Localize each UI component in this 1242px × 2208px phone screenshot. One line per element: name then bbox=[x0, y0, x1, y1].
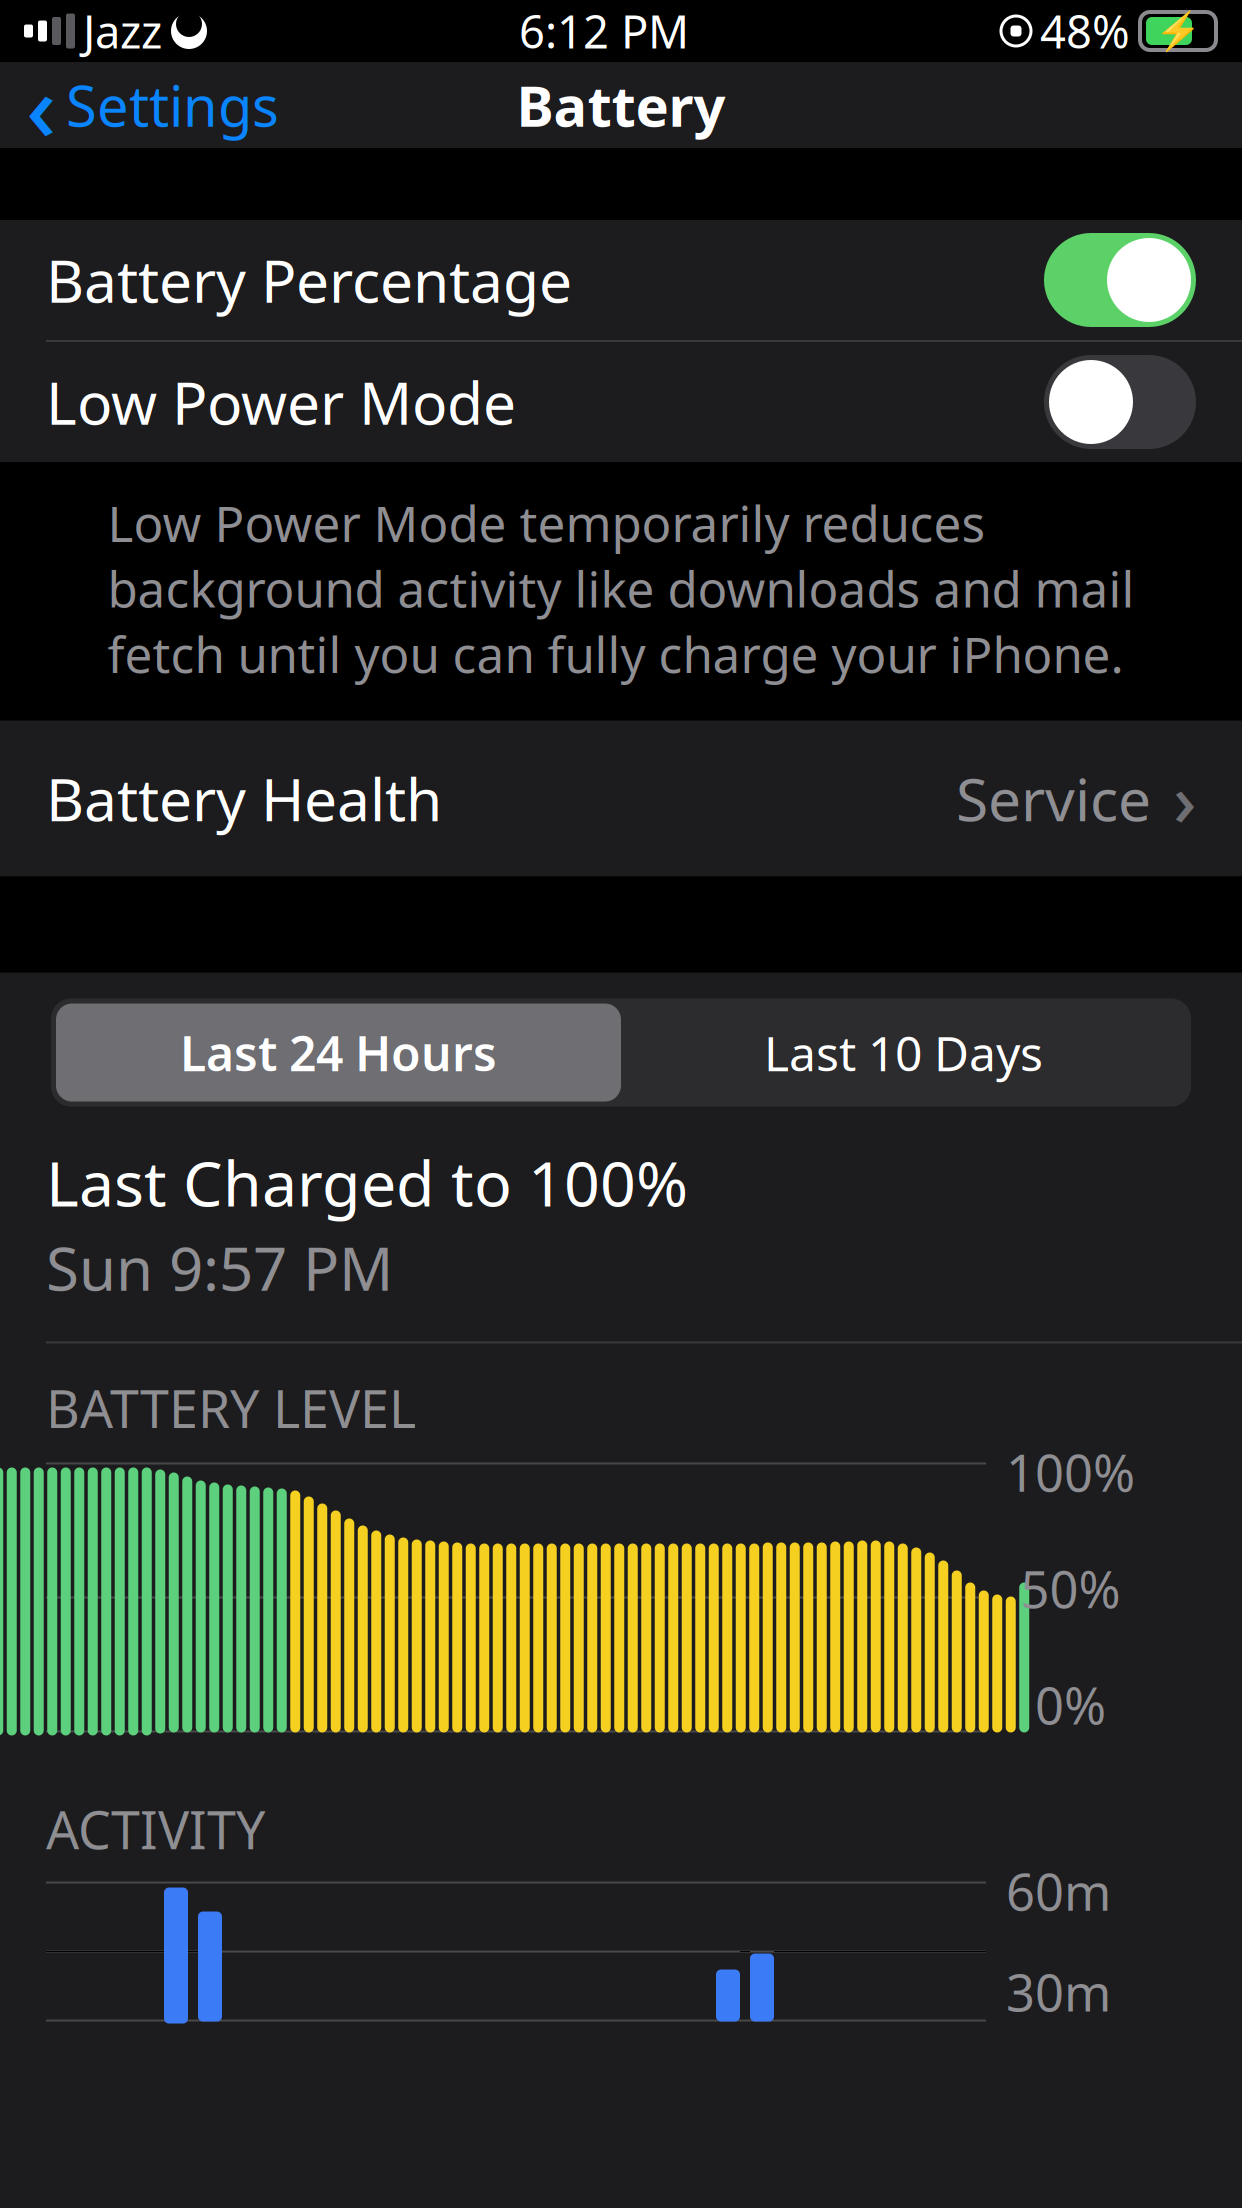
staticText: Battery Health bbox=[46, 760, 442, 837]
staticText: 0% bbox=[1035, 1671, 1106, 1738]
staticText: ⚡ bbox=[1155, 10, 1201, 52]
staticText: ACTIVITY bbox=[46, 1794, 265, 1864]
staticText: 6:12 PM bbox=[519, 1, 689, 61]
staticText: Last 24 Hours bbox=[180, 1021, 497, 1084]
staticText: Jazz bbox=[83, 1, 162, 61]
staticText: BATTERY LEVEL bbox=[46, 1373, 416, 1442]
staticText: Last 10 Days bbox=[764, 1021, 1043, 1084]
staticText: Battery bbox=[516, 68, 725, 142]
staticText: Low Power Mode bbox=[46, 363, 516, 441]
staticText: 50% bbox=[1020, 1555, 1120, 1622]
staticText: 100% bbox=[1006, 1438, 1135, 1506]
staticText: ‹ bbox=[26, 43, 56, 167]
button[interactable]: Last 24 Hours bbox=[56, 1003, 621, 1101]
button[interactable]: Battery Percentage bbox=[0, 220, 1242, 340]
staticText: Sun 9:57 PM bbox=[46, 1228, 393, 1307]
staticText: Settings bbox=[66, 68, 279, 142]
button[interactable]: Last 10 Days bbox=[621, 1003, 1186, 1101]
staticText: 48% bbox=[1040, 1, 1130, 61]
staticText: Low Power Mode temporarily reduces backg… bbox=[107, 490, 1134, 686]
staticText: Last Charged to 100% bbox=[46, 1140, 688, 1224]
staticText: › bbox=[1173, 751, 1196, 846]
staticText: 60m bbox=[1006, 1857, 1111, 1925]
button[interactable]: Battery Health bbox=[0, 720, 1242, 876]
staticText: Service bbox=[956, 760, 1151, 837]
staticText: Battery Percentage bbox=[46, 241, 572, 319]
button[interactable]: ‹ bbox=[0, 62, 305, 148]
button[interactable]: Low Power Mode bbox=[0, 342, 1242, 462]
staticText: 30m bbox=[1006, 1958, 1111, 2026]
